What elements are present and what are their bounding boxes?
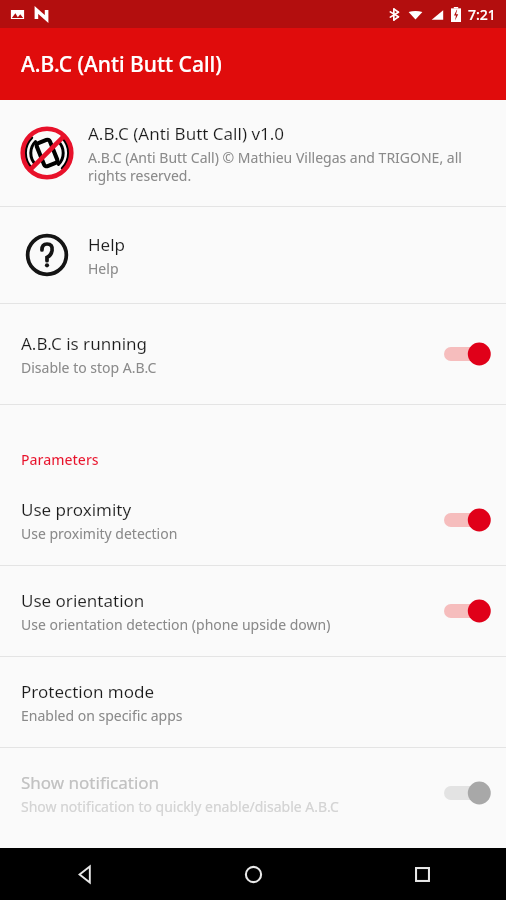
- button[interactable]: Use orientation: [0, 566, 506, 656]
- staticText: Help: [88, 233, 126, 256]
- button[interactable]: Help: [0, 207, 506, 303]
- button[interactable]: Back: [62, 852, 106, 896]
- staticText: Use orientation detection (phone upside …: [21, 615, 331, 634]
- button[interactable]: Protection mode: [0, 657, 506, 747]
- staticText: Help: [88, 259, 119, 278]
- staticText: Enabled on specific apps: [21, 706, 183, 725]
- button[interactable]: A.B.C is running: [0, 304, 506, 404]
- staticText: A.B.C (Anti Butt Call) v1.0: [88, 122, 285, 145]
- button[interactable]: Toggle on: [444, 597, 488, 625]
- staticText: Use proximity: [21, 498, 132, 521]
- button[interactable]: Use proximity: [0, 475, 506, 565]
- button[interactable]: Home: [231, 852, 275, 896]
- button[interactable]: Recent apps: [400, 852, 444, 896]
- button[interactable]: Toggle on: [444, 779, 488, 807]
- staticText: Disable to stop A.B.C: [21, 358, 157, 377]
- staticText: Use proximity detection: [21, 524, 178, 543]
- staticText: Show notification: [21, 771, 160, 794]
- staticText: 7:21: [468, 5, 496, 24]
- staticText: A.B.C (Anti Butt Call): [21, 50, 222, 79]
- button[interactable]: Toggle on: [444, 340, 488, 368]
- staticText: Use orientation: [21, 589, 145, 612]
- staticText: Show notification to quickly enable/disa…: [21, 797, 339, 816]
- button[interactable]: A.B.C (Anti Butt Call) v1.0: [0, 100, 506, 206]
- button[interactable]: Toggle on: [444, 506, 488, 534]
- staticText: Parameters: [21, 450, 99, 469]
- staticText: A.B.C is running: [21, 332, 148, 355]
- staticText: Protection mode: [21, 680, 155, 703]
- staticText: A.B.C (Anti Butt Call) © Mathieu Villega…: [88, 148, 488, 185]
- button[interactable]: Show notification: [0, 748, 506, 838]
